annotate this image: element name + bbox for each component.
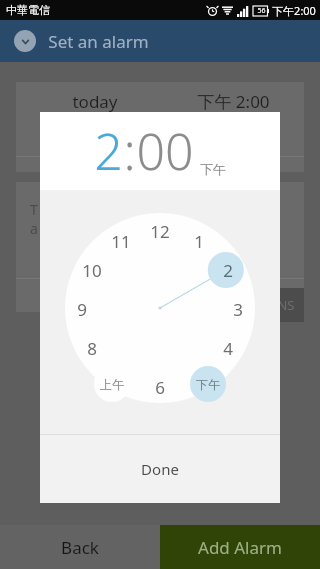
- button[interactable]: 7: [108, 366, 134, 386]
- button[interactable]: 8: [79, 337, 105, 357]
- staticText: Add Alarm: [198, 536, 282, 559]
- staticText: 下午: [196, 377, 220, 392]
- button[interactable]: 10: [79, 259, 105, 279]
- staticText: 中華電信: [6, 3, 50, 17]
- button[interactable]: 4: [215, 337, 241, 357]
- staticText: :: [123, 117, 136, 185]
- staticText: Set an alarm: [48, 30, 149, 53]
- button[interactable]: 12: [147, 220, 173, 240]
- button[interactable]: 上午: [94, 366, 130, 402]
- staticText: 5: [194, 366, 204, 386]
- button[interactable]: 3: [225, 298, 251, 318]
- staticText: 下午: [200, 161, 226, 177]
- staticText: Back: [61, 536, 99, 559]
- button[interactable]: 6: [147, 376, 173, 396]
- staticText: T: [30, 200, 38, 219]
- staticText: NS: [277, 296, 295, 314]
- button[interactable]: Back: [0, 525, 160, 569]
- staticText: 2: [223, 259, 233, 279]
- staticText: 上午: [100, 377, 124, 392]
- staticText: 9: [77, 298, 87, 318]
- button[interactable]: 2: [215, 259, 241, 279]
- button[interactable]: 9: [69, 298, 95, 318]
- staticText: 下午 2:00: [197, 90, 270, 113]
- button[interactable]: 下午: [190, 366, 226, 402]
- button[interactable]: 00: [136, 117, 194, 185]
- staticText: a: [30, 219, 38, 238]
- button[interactable]: Done: [40, 435, 280, 503]
- staticText: today: [72, 90, 118, 113]
- staticText: 3: [233, 298, 243, 318]
- button[interactable]: Expand: [14, 30, 36, 52]
- button[interactable]: 5: [186, 366, 212, 386]
- button[interactable]: 1: [186, 230, 212, 250]
- staticText: 11: [111, 230, 131, 250]
- staticText: 7: [116, 366, 126, 386]
- button[interactable]: Add Alarm: [160, 525, 320, 569]
- staticText: 56: [257, 6, 266, 16]
- staticText: Done: [141, 459, 179, 479]
- button[interactable]: 11: [108, 230, 134, 250]
- staticText: 8: [87, 337, 97, 357]
- staticText: 12: [150, 220, 170, 240]
- staticText: 1: [194, 230, 204, 250]
- staticText: 6: [155, 376, 165, 396]
- staticText: 下午2:00: [272, 3, 316, 18]
- button[interactable]: 2: [94, 117, 123, 185]
- staticText: 10: [82, 259, 102, 279]
- staticText: 4: [223, 337, 233, 357]
